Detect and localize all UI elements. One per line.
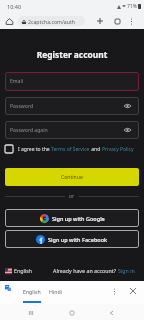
- button[interactable]: Password again: [5, 121, 139, 139]
- button[interactable]: Password: [5, 97, 139, 115]
- button[interactable]: Show password: [124, 103, 131, 109]
- staticText: 71%: [127, 3, 137, 10]
- button[interactable]: English: [5, 267, 33, 274]
- staticText: Sign up with Facebook: [48, 236, 108, 243]
- button[interactable]: Recent apps: [22, 306, 39, 319]
- staticText: Sign up with Google: [52, 215, 105, 222]
- button[interactable]: Back: [103, 306, 120, 319]
- button[interactable]: More options: [108, 285, 120, 297]
- staticText: Continue: [61, 174, 83, 181]
- staticText: Already have an account?: [53, 267, 118, 274]
- button[interactable]: Show password: [124, 127, 131, 133]
- staticText: Privacy Policy: [102, 146, 134, 153]
- button[interactable]: Tabs: [111, 15, 123, 27]
- staticText: Password: [10, 103, 34, 110]
- button[interactable]: More options: [125, 15, 137, 27]
- button[interactable]: Home: [3, 15, 15, 27]
- button[interactable]: English: [19, 281, 45, 304]
- button[interactable]: Sign up with Google: [5, 209, 139, 227]
- staticText: 10:40: [7, 3, 22, 10]
- button[interactable]: Home: [63, 306, 80, 319]
- staticText: and: [90, 146, 102, 153]
- staticText: Hindi: [49, 288, 62, 295]
- staticText: English: [23, 288, 41, 295]
- button[interactable]: Close: [127, 285, 139, 297]
- staticText: Terms of Service: [51, 146, 90, 153]
- staticText: or: [69, 193, 75, 200]
- button[interactable]: Hindi: [46, 281, 64, 304]
- button[interactable]: Sign in: [118, 267, 135, 274]
- button[interactable]: New tab: [94, 15, 106, 27]
- button[interactable]: I agree to the: [5, 143, 139, 155]
- button[interactable]: Continue: [5, 168, 139, 186]
- staticText: 2captcha.com/auth: [28, 18, 76, 25]
- button[interactable]: Email: [5, 72, 139, 91]
- staticText: English: [14, 267, 33, 274]
- button[interactable]: Sign up with Facebook: [5, 230, 139, 248]
- staticText: Register account: [0, 49, 144, 60]
- staticText: Email: [10, 78, 24, 85]
- button[interactable]: 2captcha.com/auth: [18, 16, 85, 26]
- staticText: I agree to the: [18, 146, 51, 153]
- button[interactable]: Translate: [2, 282, 14, 294]
- staticText: Password again: [10, 127, 48, 134]
